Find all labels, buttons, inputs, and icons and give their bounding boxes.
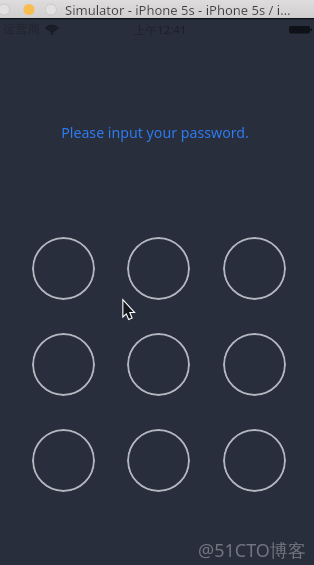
staticText: Simulator - iPhone 5s - iPhone 5s / i… xyxy=(65,1,291,19)
button[interactable] xyxy=(223,237,286,300)
staticText: 上午12:41 xyxy=(134,22,187,38)
button[interactable] xyxy=(127,429,190,492)
button[interactable] xyxy=(127,333,190,396)
staticText: @51CTO博客 xyxy=(198,538,306,563)
staticText: 运营商 xyxy=(3,21,41,36)
button[interactable] xyxy=(32,333,95,396)
staticText: Please input your password. xyxy=(0,123,312,142)
button[interactable] xyxy=(223,333,286,396)
button[interactable] xyxy=(32,237,95,300)
button[interactable] xyxy=(127,237,190,300)
button[interactable] xyxy=(32,429,95,492)
button[interactable] xyxy=(223,429,286,492)
